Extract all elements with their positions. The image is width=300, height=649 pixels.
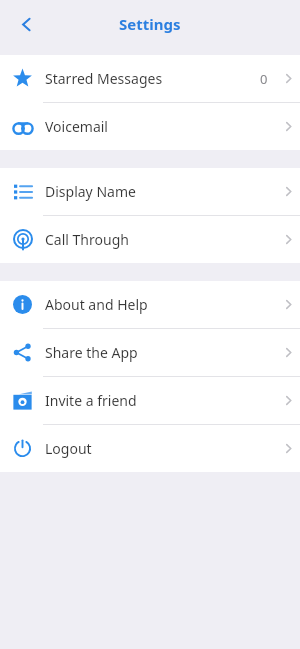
- button[interactable]: Voicemail: [0, 103, 300, 150]
- staticText: Starred Messages: [45, 69, 163, 88]
- button[interactable]: Display Name: [0, 168, 300, 215]
- staticText: Logout: [45, 439, 92, 458]
- staticText: Call Through: [45, 230, 129, 249]
- button[interactable]: Back: [8, 6, 44, 42]
- button[interactable]: About and Help: [0, 281, 300, 328]
- staticText: Invite a friend: [45, 391, 137, 410]
- button[interactable]: Call Through: [0, 216, 300, 263]
- staticText: Display Name: [45, 182, 136, 201]
- button[interactable]: Logout: [0, 425, 300, 472]
- staticText: About and Help: [45, 295, 148, 314]
- staticText: 0: [260, 70, 268, 88]
- staticText: Share the App: [45, 343, 138, 362]
- staticText: Voicemail: [45, 117, 108, 136]
- button[interactable]: Starred Messages: [0, 55, 300, 102]
- staticText: Settings: [119, 14, 181, 34]
- button[interactable]: Share the App: [0, 329, 300, 376]
- button[interactable]: Invite a friend: [0, 377, 300, 424]
